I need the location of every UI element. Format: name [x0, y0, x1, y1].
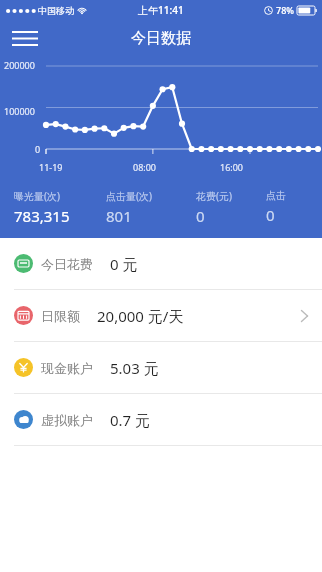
staticText: 上午11:41 — [138, 3, 184, 17]
staticText: 78% — [276, 4, 294, 16]
staticText: 现金账户 — [41, 360, 93, 376]
staticText: 0 — [196, 206, 205, 226]
staticText: 曝光量(次) — [14, 189, 60, 203]
staticText: 801 — [106, 206, 132, 226]
button[interactable]: 虚拟账户 — [0, 394, 322, 445]
staticText: 08:00 — [133, 161, 157, 173]
staticText: 100000 — [4, 105, 35, 117]
staticText: 783,315 — [14, 206, 70, 226]
staticText: 花费(元) — [196, 189, 232, 203]
button[interactable]: 今日花费 — [0, 238, 322, 289]
button[interactable]: 日限额 — [0, 290, 322, 341]
staticText: 5.03 元 — [110, 358, 159, 378]
staticText: 日限额 — [41, 308, 80, 324]
staticText: 0 元 — [110, 254, 138, 274]
staticText: 11-19 — [39, 161, 63, 173]
staticText: 0 — [35, 143, 41, 155]
staticText: 今日花费 — [41, 256, 93, 272]
staticText: 点击量(次) — [106, 189, 152, 203]
button[interactable]: Menu — [6, 20, 44, 56]
staticText: 20,000 元/天 — [97, 306, 184, 326]
staticText: 200000 — [4, 59, 35, 71]
staticText: 0 — [266, 205, 275, 225]
staticText: 中国移动 — [38, 5, 74, 16]
staticText: 0.7 元 — [110, 410, 151, 430]
button[interactable]: 现金账户 — [0, 342, 322, 393]
staticText: 点击 — [266, 189, 286, 202]
staticText: 今日数据 — [131, 29, 191, 48]
staticText: 虚拟账户 — [41, 412, 93, 428]
staticText: 16:00 — [220, 161, 244, 173]
